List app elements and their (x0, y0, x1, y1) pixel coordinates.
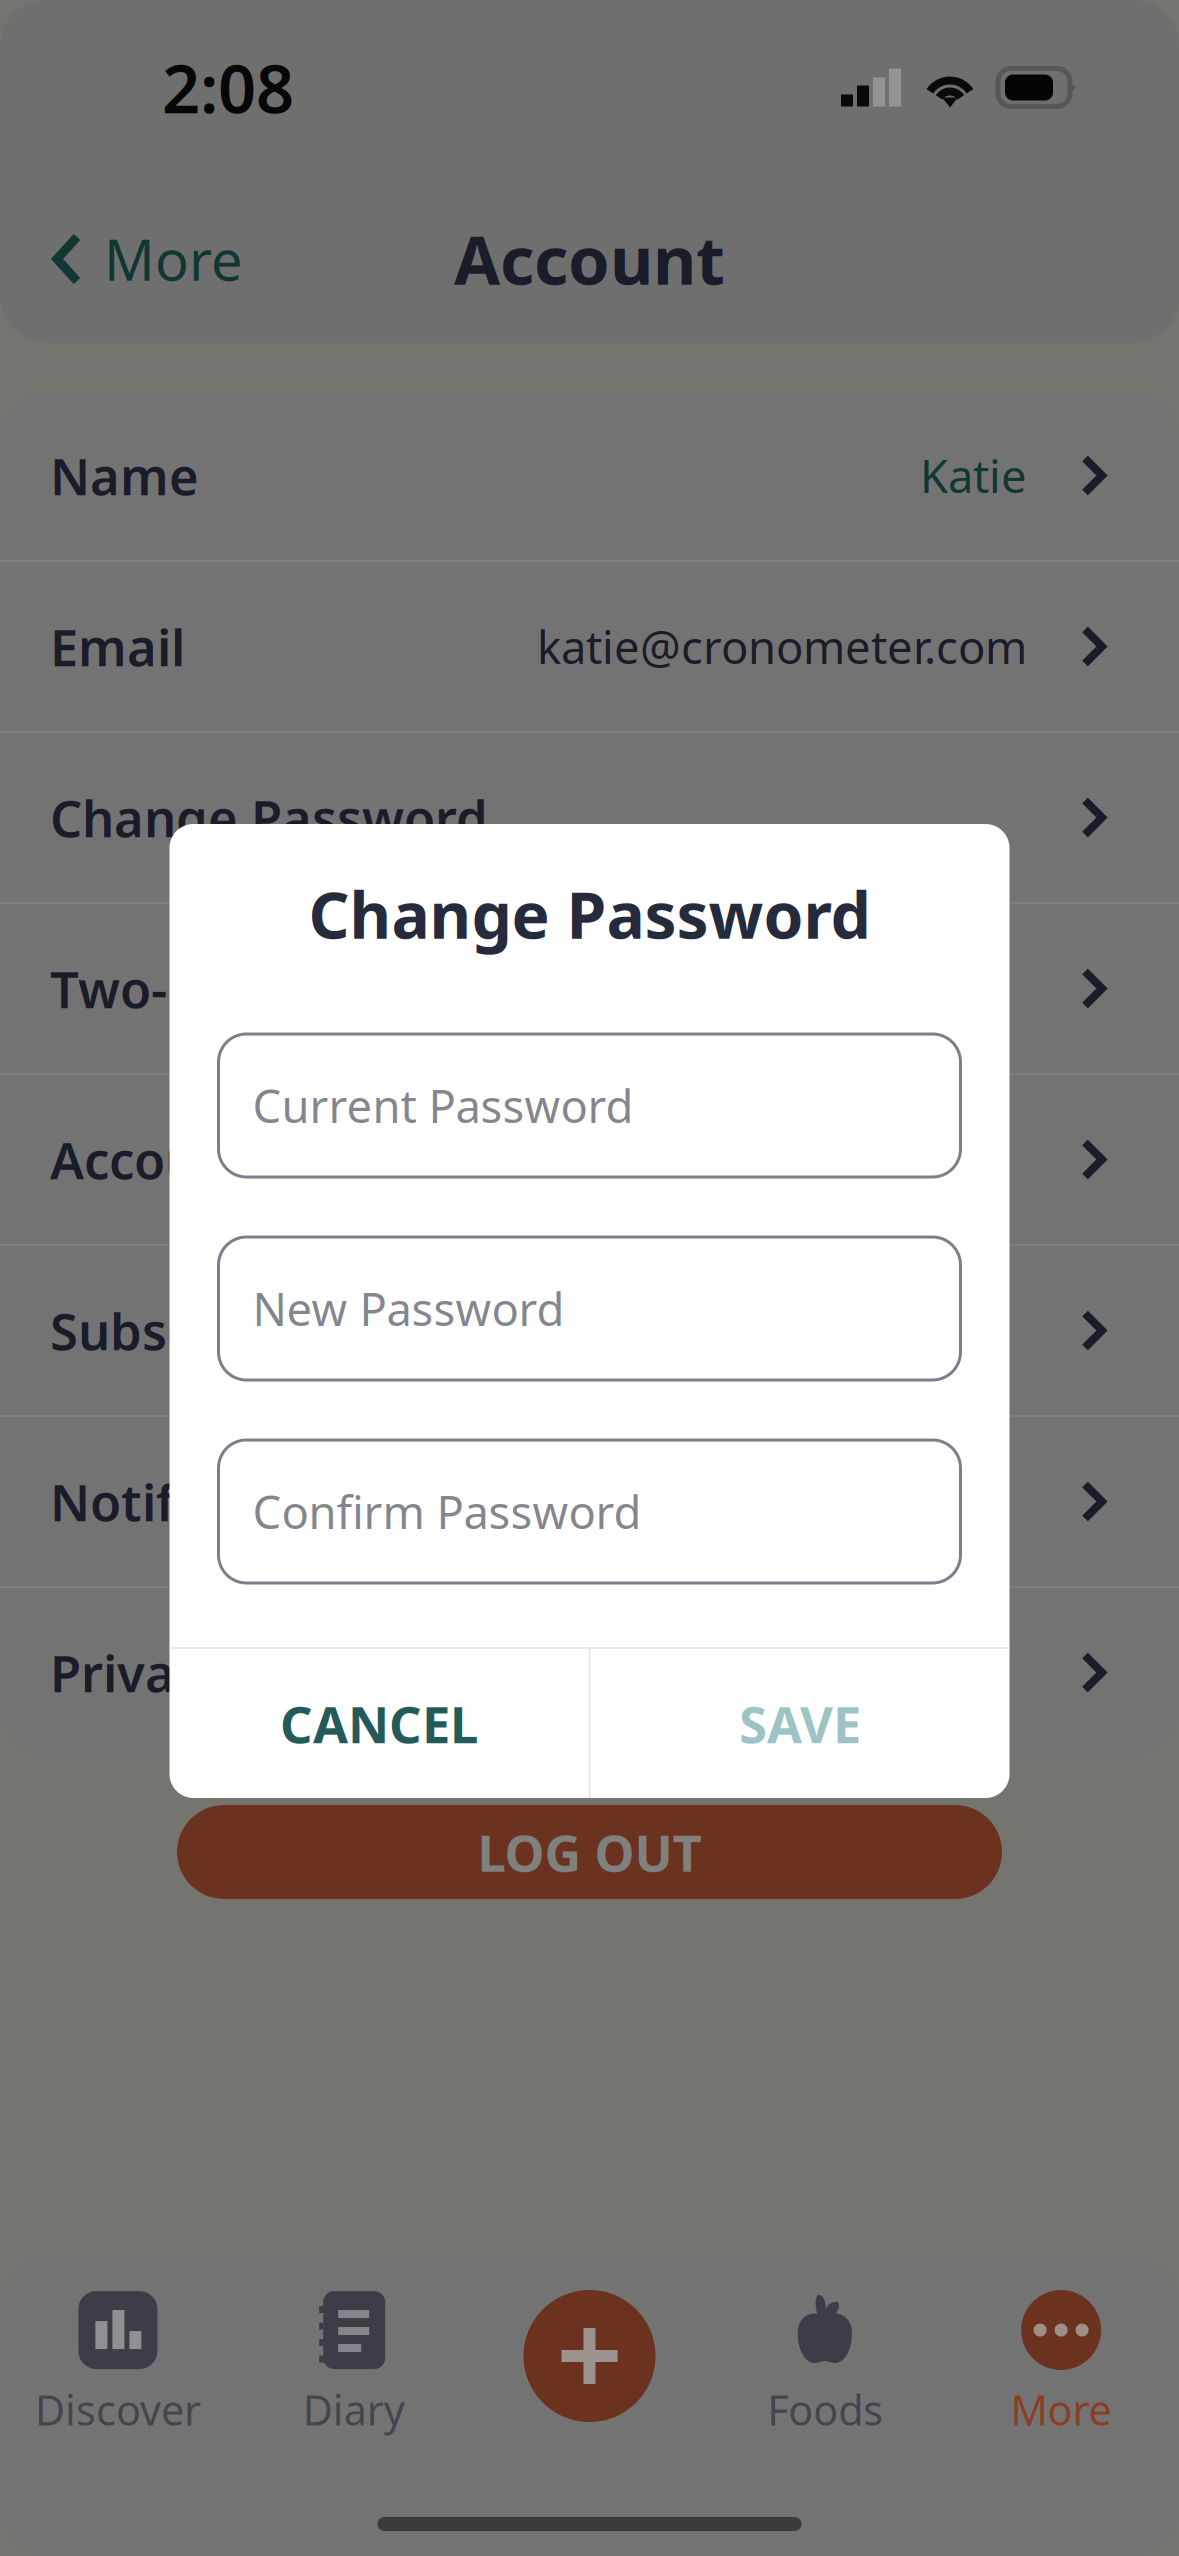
staticText: katie@cronometer.com (537, 616, 1027, 677)
staticText: SAVE (739, 1690, 861, 1757)
staticText: Discover (35, 2382, 201, 2437)
button[interactable]: Change Password (0, 733, 1179, 902)
staticText: 2:08 (162, 43, 294, 132)
staticText: Privacy (50, 1639, 228, 1706)
button[interactable]: SAVE (590, 1649, 1009, 1798)
staticText: Change Password (50, 784, 488, 851)
staticText: Name (50, 442, 199, 509)
staticText: Account (454, 215, 725, 303)
button[interactable]: Notifications (0, 1417, 1179, 1586)
button[interactable]: More (943, 2256, 1179, 2431)
staticText: Subscription (50, 1297, 358, 1364)
button[interactable]: More (0, 175, 243, 343)
staticText: More (1011, 2382, 1112, 2437)
button[interactable]: Foods (707, 2256, 943, 2431)
button[interactable]: Diary (236, 2256, 472, 2431)
staticText: Diary (303, 2382, 405, 2437)
button[interactable]: LOG OUT (177, 1805, 1002, 1899)
staticText: Katie (920, 445, 1027, 506)
button[interactable]: Privacy (0, 1588, 1179, 1757)
button[interactable]: Discover (0, 2256, 236, 2431)
staticText: Account Type (50, 1126, 381, 1193)
staticText: Notifications (50, 1468, 367, 1535)
staticText: Change Password (308, 871, 870, 956)
staticText: LOG OUT (477, 1818, 701, 1886)
staticText: Foods (767, 2382, 883, 2437)
staticText: New Password (252, 1278, 564, 1339)
staticText: Email (50, 613, 185, 680)
button[interactable]: Subscription (0, 1246, 1179, 1415)
staticText: Two-Factor Authentication (50, 955, 705, 1022)
button[interactable]: Add (472, 2256, 707, 2431)
button[interactable]: Name (0, 391, 1179, 560)
button[interactable]: CANCEL (169, 1649, 588, 1798)
button[interactable]: Email (0, 562, 1179, 731)
staticText: More (104, 222, 243, 296)
staticText: CANCEL (280, 1690, 478, 1757)
button[interactable]: Account Type (0, 1075, 1179, 1244)
staticText: Confirm Password (252, 1481, 641, 1542)
staticText: Current Password (252, 1075, 633, 1136)
button[interactable]: Two-Factor Authentication (0, 904, 1179, 1073)
